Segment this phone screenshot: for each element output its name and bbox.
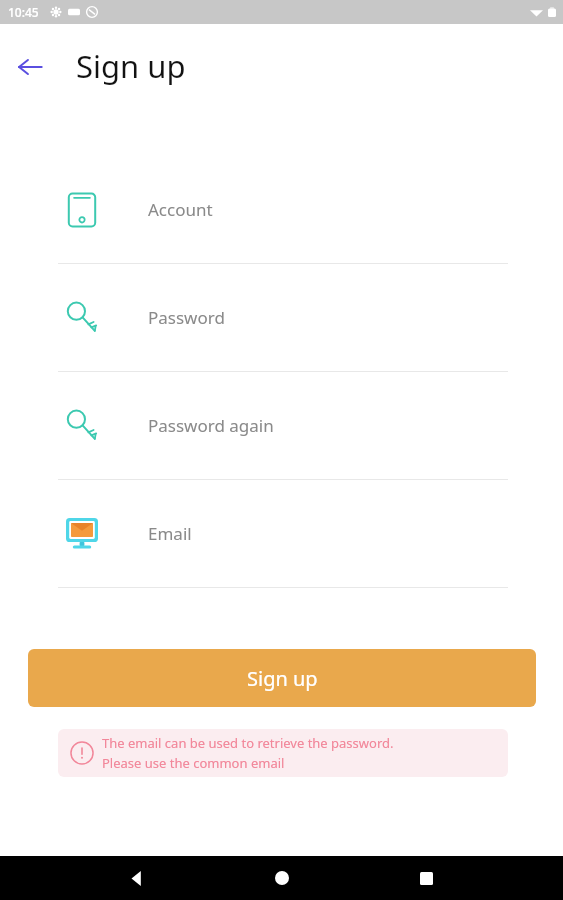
button[interactable]: Back — [120, 861, 154, 895]
button[interactable]: Email — [0, 480, 563, 587]
staticText: Password — [148, 306, 225, 329]
button[interactable]: Account — [0, 156, 563, 263]
button[interactable]: Sign up — [28, 649, 536, 707]
staticText: Sign up — [76, 45, 186, 87]
staticText: The email can be used to retrieve the pa… — [102, 734, 394, 752]
button[interactable]: Recent apps — [409, 861, 443, 895]
staticText: Sign up — [247, 665, 318, 692]
staticText: Account — [148, 198, 213, 221]
button[interactable]: Password — [0, 264, 563, 371]
staticText: 10:45 — [8, 4, 39, 20]
button[interactable]: Home — [265, 861, 299, 895]
staticText: Email — [148, 522, 192, 545]
staticText: Password again — [148, 414, 274, 437]
button[interactable]: Back — [6, 43, 54, 91]
staticText: Please use the common email — [102, 754, 285, 772]
button[interactable]: Password again — [0, 372, 563, 479]
